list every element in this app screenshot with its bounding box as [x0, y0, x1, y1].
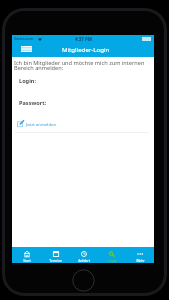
button[interactable]: Start: [12, 247, 41, 263]
staticText: Login:: [19, 77, 37, 85]
button[interactable]: Home: [72, 269, 95, 292]
staticText: Mehr: [136, 258, 145, 262]
button[interactable]: Mehr: [126, 247, 154, 263]
staticText: Jetzt anmelden: [26, 121, 57, 127]
staticText: Ich bin Mitglieder und möchte mich zum i…: [14, 59, 145, 72]
staticText: Anfahrt: [78, 258, 90, 262]
staticText: Start: [23, 258, 31, 262]
staticText: Termine: [49, 258, 62, 262]
button[interactable]: Open navigation menu: [20, 42, 33, 55]
staticText: Login: [108, 258, 117, 262]
staticText: Mitglieder-Login: [62, 45, 110, 53]
staticText: Passwort:: [19, 99, 47, 107]
button[interactable]: Jetzt anmelden: [17, 120, 57, 127]
button[interactable]: Termine: [41, 247, 70, 263]
button[interactable]: Login: [98, 247, 126, 263]
button[interactable]: Anfahrt: [70, 247, 98, 263]
staticText: Swisscom: [14, 36, 34, 42]
staticText: 4:37 PM: [75, 36, 92, 42]
